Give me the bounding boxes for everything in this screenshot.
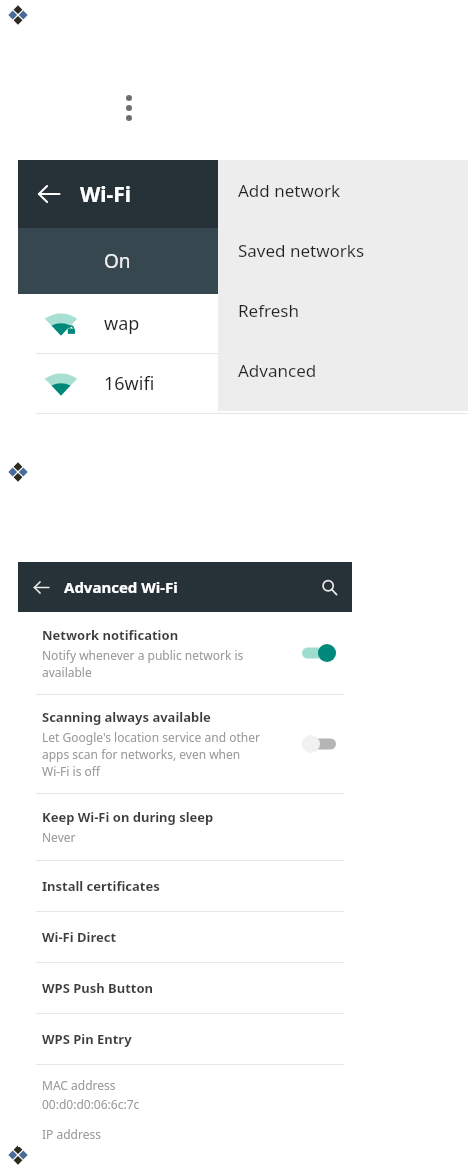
staticText: Wi-Fi Direct [42,928,117,946]
button[interactable]: wap [18,294,468,353]
button[interactable]: Navigate up [18,160,80,228]
button[interactable]: On [286,612,352,694]
button[interactable]: On [104,228,194,294]
button[interactable]: Keep Wi-Fi on during sleep [18,794,352,860]
staticText: WPS Push Button [42,979,154,997]
staticText: On [104,248,131,274]
button[interactable]: Off [286,695,352,793]
staticText: Scanning always available [42,708,211,726]
button[interactable]: Network notification [18,612,352,694]
staticText: apps scan for networks, even when [42,746,241,762]
button[interactable]: Navigate up [18,562,64,612]
staticText: Never [42,829,76,845]
staticText: available [42,664,92,680]
staticText: WPS Pin Entry [42,1030,132,1048]
button[interactable]: Search [306,562,352,612]
staticText: Notify whenever a public network is [42,647,244,663]
button[interactable]: WPS Pin Entry [18,1014,352,1064]
staticText: Wi-Fi is off [42,763,101,779]
button[interactable]: Wi-Fi Direct [18,912,352,962]
staticText: Install certificates [42,877,160,895]
staticText: 16wifi [104,371,155,396]
staticText: Keep Wi-Fi on during sleep [42,808,214,826]
staticText: 00:d0:d0:06:6c:7c [42,1096,140,1112]
staticText: Advanced Wi-Fi [64,577,178,597]
staticText: Saved networks [238,239,365,262]
button[interactable]: Advanced [218,340,468,400]
staticText: Add network [238,179,341,202]
staticText: Let Google's location service and other [42,729,260,745]
button[interactable]: Scanning always available [18,695,352,793]
staticText: Refresh [238,299,299,322]
button[interactable]: Refresh [218,280,468,340]
staticText: Network notification [42,626,179,644]
button[interactable]: 16wifi [18,354,468,413]
staticText: Wi-Fi [80,180,132,209]
button[interactable]: More options [112,88,146,128]
staticText: IP address [42,1126,101,1142]
staticText: wap [104,311,140,336]
button[interactable]: Saved networks [218,220,468,280]
button[interactable]: WPS Push Button [18,963,352,1013]
staticText: Advanced [238,359,317,382]
button[interactable]: Add network [218,160,468,220]
staticText: MAC address [42,1077,116,1093]
button[interactable]: Install certificates [18,861,352,911]
